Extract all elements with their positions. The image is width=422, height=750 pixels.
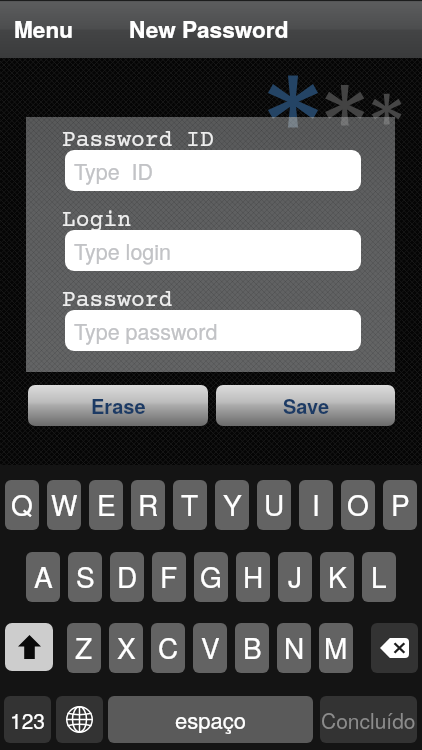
- button[interactable]: N: [277, 623, 311, 673]
- button[interactable]: Type password: [65, 310, 361, 351]
- button[interactable]: Z: [67, 623, 101, 673]
- staticText: M: [324, 627, 348, 667]
- button[interactable]: Type ID: [65, 150, 361, 191]
- button[interactable]: Q: [5, 480, 39, 530]
- button[interactable]: Type login: [65, 230, 361, 271]
- staticText: R: [138, 484, 159, 524]
- staticText: L: [371, 556, 387, 596]
- staticText: W: [51, 484, 78, 524]
- staticText: F: [160, 556, 178, 596]
- button[interactable]: B: [235, 623, 269, 673]
- button[interactable]: C: [151, 623, 185, 673]
- button[interactable]: Erase: [28, 385, 208, 426]
- button[interactable]: espaço: [108, 696, 313, 743]
- button[interactable]: U: [257, 480, 291, 530]
- button[interactable]: Backspace: [371, 623, 418, 673]
- button[interactable]: A: [26, 552, 60, 602]
- staticText: Z: [75, 627, 93, 667]
- staticText: Q: [11, 484, 33, 524]
- button[interactable]: L: [362, 552, 396, 602]
- button[interactable]: K: [320, 552, 354, 602]
- button[interactable]: R: [131, 480, 165, 530]
- staticText: T: [181, 484, 199, 524]
- button[interactable]: J: [278, 552, 312, 602]
- staticText: Menu: [14, 13, 73, 45]
- staticText: Password: [62, 288, 173, 314]
- staticText: Password ID: [62, 128, 214, 154]
- staticText: Login: [62, 208, 131, 234]
- button[interactable]: S: [68, 552, 102, 602]
- button[interactable]: Y: [215, 480, 249, 530]
- staticText: V: [201, 627, 220, 667]
- staticText: O: [347, 484, 369, 524]
- staticText: I: [312, 484, 320, 524]
- staticText: N: [284, 627, 305, 667]
- staticText: J: [288, 556, 303, 596]
- staticText: Type ID: [74, 155, 154, 186]
- button[interactable]: E: [89, 480, 123, 530]
- staticText: Type password: [74, 315, 218, 346]
- button[interactable]: G: [194, 552, 228, 602]
- staticText: Erase: [91, 391, 146, 420]
- button[interactable]: Concluído: [320, 696, 417, 743]
- button[interactable]: Menu: [0, 0, 87, 58]
- staticText: B: [243, 627, 262, 667]
- button[interactable]: 123: [4, 696, 51, 743]
- staticText: Save: [283, 391, 329, 420]
- staticText: D: [117, 556, 138, 596]
- button[interactable]: I: [299, 480, 333, 530]
- staticText: H: [243, 556, 264, 596]
- staticText: C: [158, 627, 179, 667]
- button[interactable]: T: [173, 480, 207, 530]
- staticText: New Password: [129, 13, 289, 45]
- staticText: 123: [10, 705, 46, 735]
- staticText: X: [117, 627, 136, 667]
- staticText: G: [200, 556, 222, 596]
- staticText: Type login: [74, 235, 172, 266]
- button[interactable]: V: [193, 623, 227, 673]
- button[interactable]: W: [47, 480, 81, 530]
- staticText: Concluído: [321, 705, 416, 735]
- staticText: E: [97, 484, 116, 524]
- staticText: A: [34, 556, 53, 596]
- staticText: P: [391, 484, 410, 524]
- staticText: espaço: [175, 704, 246, 736]
- staticText: Y: [223, 484, 242, 524]
- staticText: U: [264, 484, 285, 524]
- button[interactable]: D: [110, 552, 144, 602]
- button[interactable]: M: [319, 623, 353, 673]
- button[interactable]: Shift: [5, 623, 53, 671]
- button[interactable]: Save: [216, 385, 395, 426]
- button[interactable]: F: [152, 552, 186, 602]
- button[interactable]: H: [236, 552, 270, 602]
- button[interactable]: P: [383, 480, 417, 530]
- staticText: K: [328, 556, 347, 596]
- staticText: S: [76, 556, 95, 596]
- button[interactable]: X: [109, 623, 143, 673]
- button[interactable]: Change keyboard: [56, 696, 103, 743]
- button[interactable]: O: [341, 480, 375, 530]
